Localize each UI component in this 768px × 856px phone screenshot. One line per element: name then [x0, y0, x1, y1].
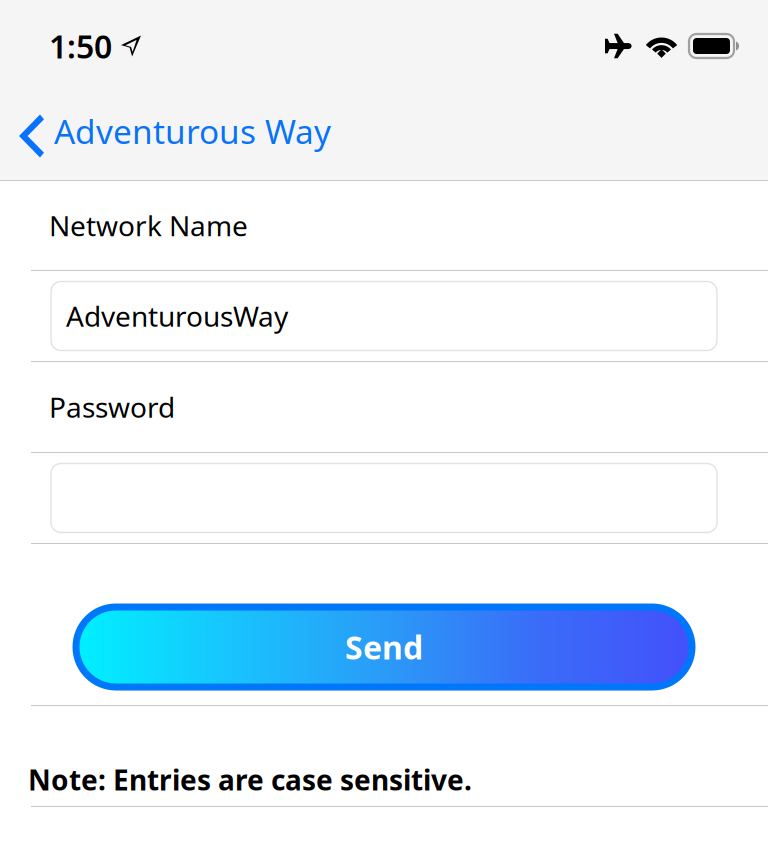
- staticText: Adventurous Way: [54, 109, 331, 153]
- staticText: Send: [345, 626, 423, 668]
- staticText: 1:50: [49, 25, 112, 67]
- staticText: Password: [49, 388, 175, 426]
- staticText: AdventurousWay: [66, 297, 288, 335]
- staticText: Note: Entries are case sensitive.: [28, 761, 472, 798]
- staticText: Network Name: [49, 207, 248, 244]
- button[interactable]: Send: [76, 607, 692, 687]
- button[interactable]: Adventurous Way: [0, 82, 345, 180]
